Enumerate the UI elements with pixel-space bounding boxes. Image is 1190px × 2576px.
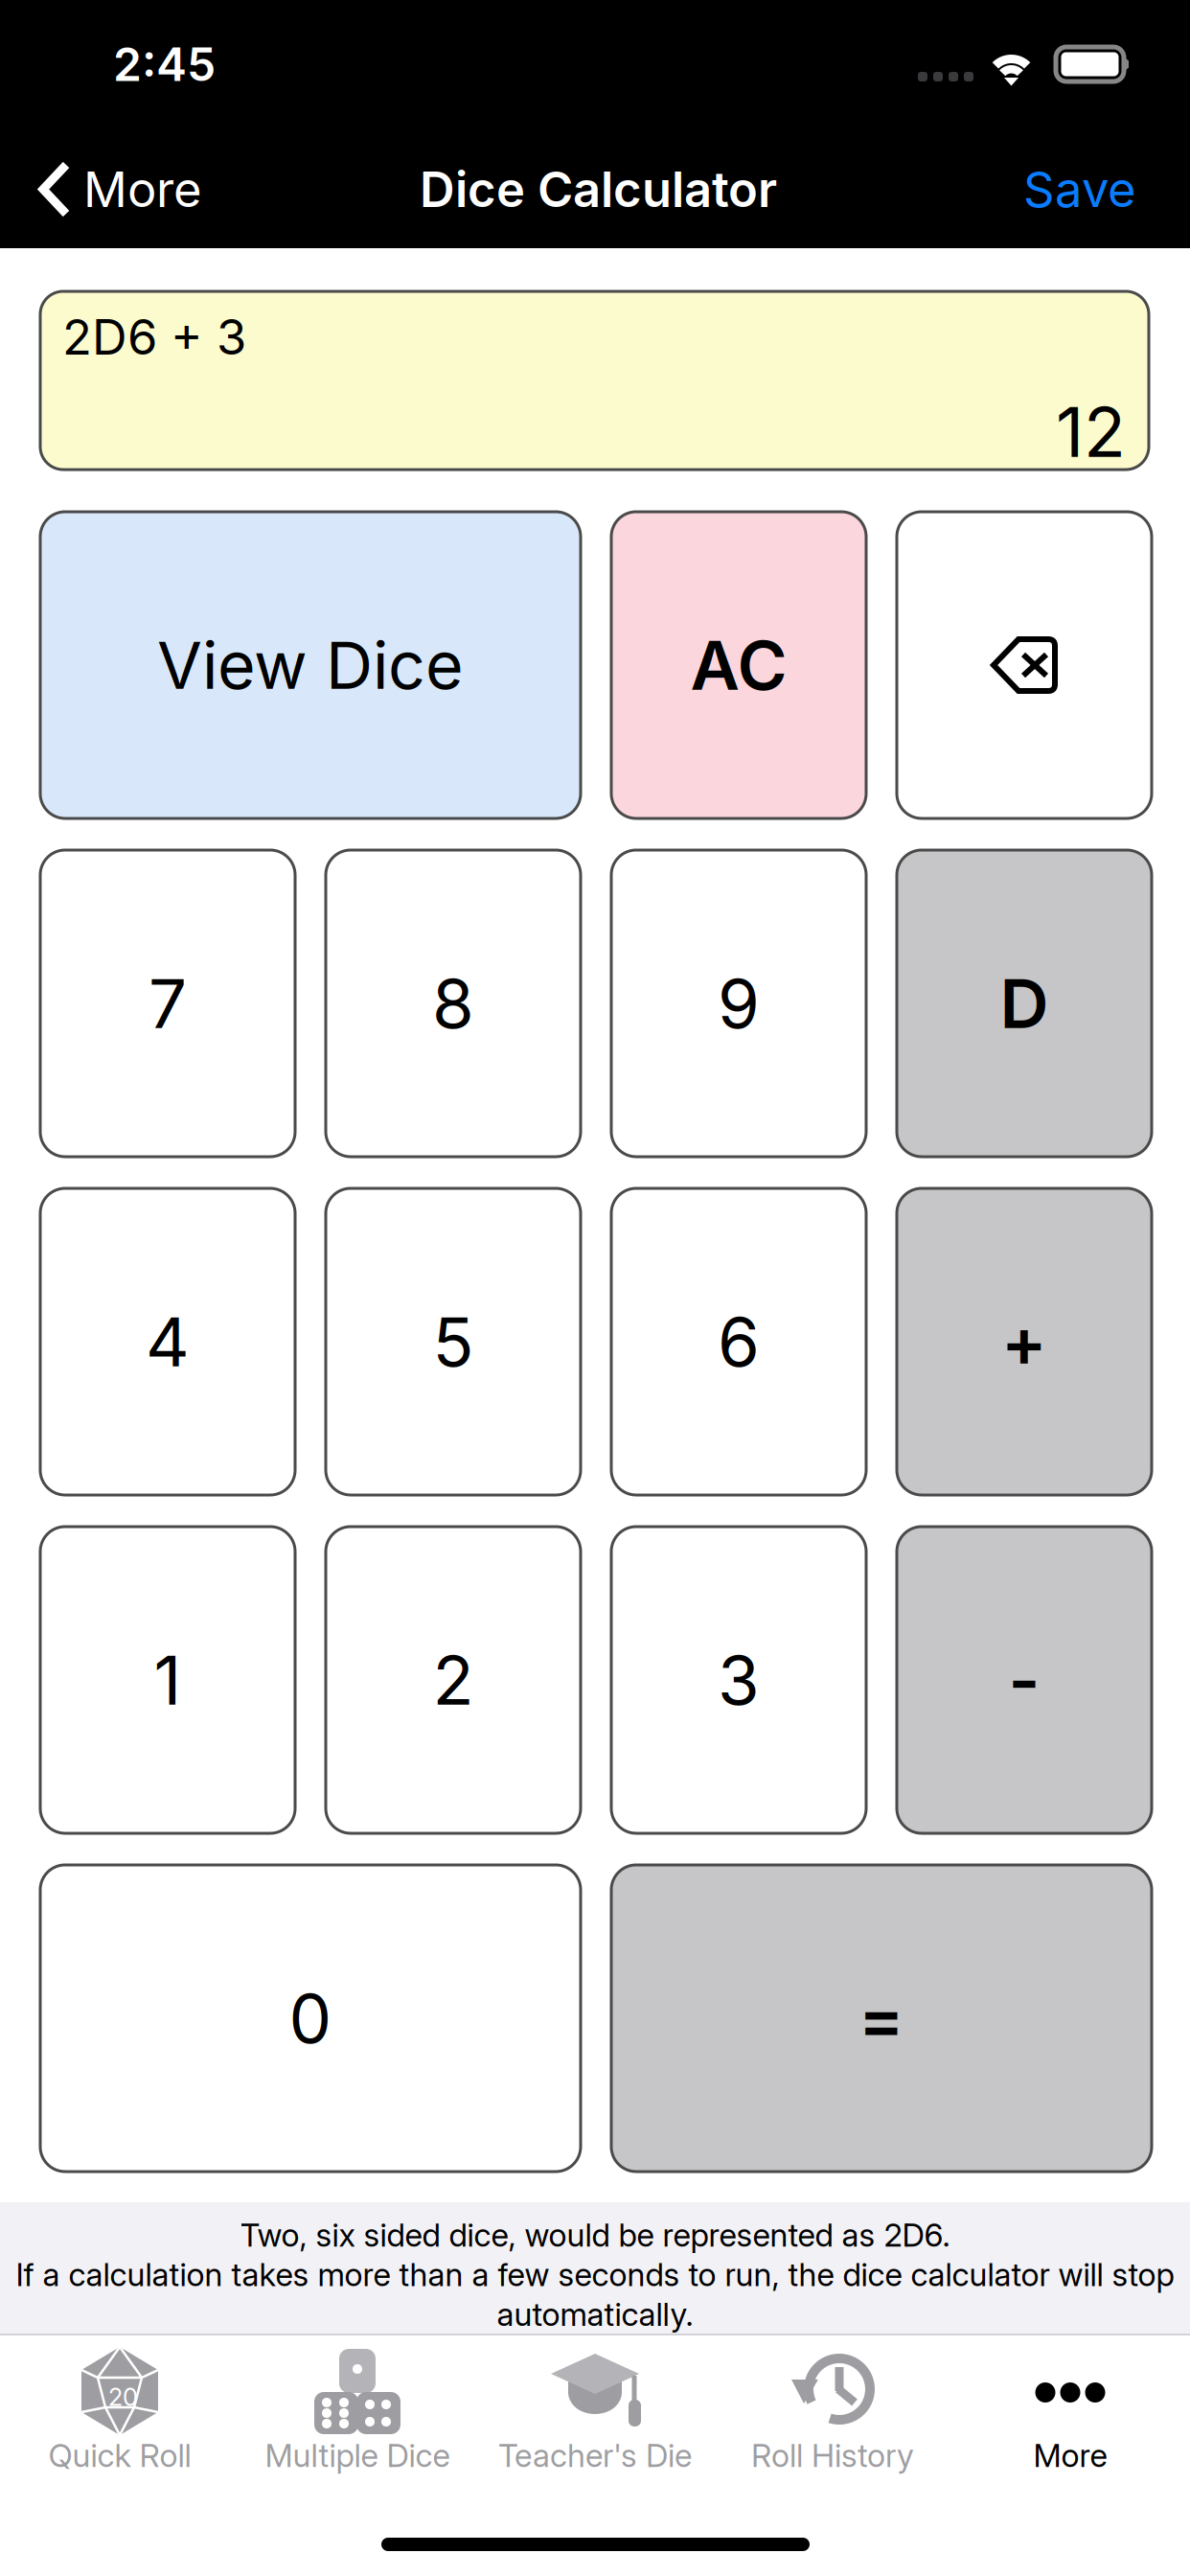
button[interactable]: - [897, 1527, 1152, 1833]
staticText: = [858, 1977, 904, 2059]
button[interactable]: Save [973, 132, 1145, 247]
button[interactable]: AC [611, 512, 866, 818]
staticText: 0 [289, 1977, 332, 2059]
button[interactable]: 4 [40, 1188, 295, 1495]
button[interactable]: 7 [40, 850, 295, 1157]
staticText: More [1033, 2436, 1107, 2475]
staticText: 2 [433, 1639, 474, 1721]
staticText: 20 [108, 2382, 138, 2412]
button[interactable]: + [897, 1188, 1152, 1495]
button[interactable]: 2 [326, 1527, 581, 1833]
button[interactable]: Roll History [714, 2335, 951, 2522]
button[interactable]: More [951, 2335, 1189, 2522]
staticText: Multiple Dice [265, 2436, 450, 2475]
button[interactable]: = [611, 1865, 1152, 2172]
button[interactable]: Teacher's Die [476, 2335, 714, 2522]
staticText: 3 [718, 1639, 760, 1721]
button[interactable]: Delete [897, 512, 1152, 818]
staticText: automatically. [497, 2295, 693, 2334]
staticText: View Dice [157, 626, 464, 705]
button[interactable]: 3 [611, 1527, 866, 1833]
staticText: 1 [154, 1639, 182, 1721]
button[interactable]: 0 [40, 1865, 581, 2172]
button[interactable]: 1 [40, 1527, 295, 1833]
staticText: 9 [718, 962, 760, 1044]
staticText: - [1008, 1639, 1040, 1721]
staticText: Dice Calculator [420, 160, 777, 219]
button[interactable]: 5 [326, 1188, 581, 1495]
button[interactable]: 8 [326, 850, 581, 1157]
staticText: 2:45 [113, 36, 216, 92]
staticText: More [83, 160, 202, 219]
button[interactable]: Multiple Dice [239, 2335, 476, 2522]
staticText: 4 [146, 1301, 190, 1383]
staticText: Teacher's Die [498, 2436, 692, 2475]
button[interactable]: More [0, 132, 230, 247]
staticText: 6 [718, 1301, 760, 1383]
staticText: 5 [433, 1301, 474, 1383]
staticText: Roll History [751, 2436, 914, 2475]
staticText: Two, six sided dice, would be represente… [240, 2216, 950, 2254]
button[interactable]: 20 [1, 2335, 239, 2522]
staticText: 7 [149, 962, 187, 1044]
staticText: If a calculation takes more than a few s… [16, 2255, 1174, 2294]
staticText: + [1001, 1301, 1047, 1383]
staticText: 8 [432, 962, 474, 1044]
button[interactable]: View Dice [40, 512, 581, 818]
staticText: Save [1023, 160, 1136, 219]
staticText: AC [690, 624, 787, 706]
staticText: Quick Roll [48, 2436, 191, 2475]
button[interactable]: 6 [611, 1188, 866, 1495]
staticText: 12 [1056, 390, 1126, 474]
staticText: D [1000, 962, 1049, 1044]
button[interactable]: D [897, 850, 1152, 1157]
staticText: 2D6 + 3 [62, 308, 246, 366]
button[interactable]: 9 [611, 850, 866, 1157]
